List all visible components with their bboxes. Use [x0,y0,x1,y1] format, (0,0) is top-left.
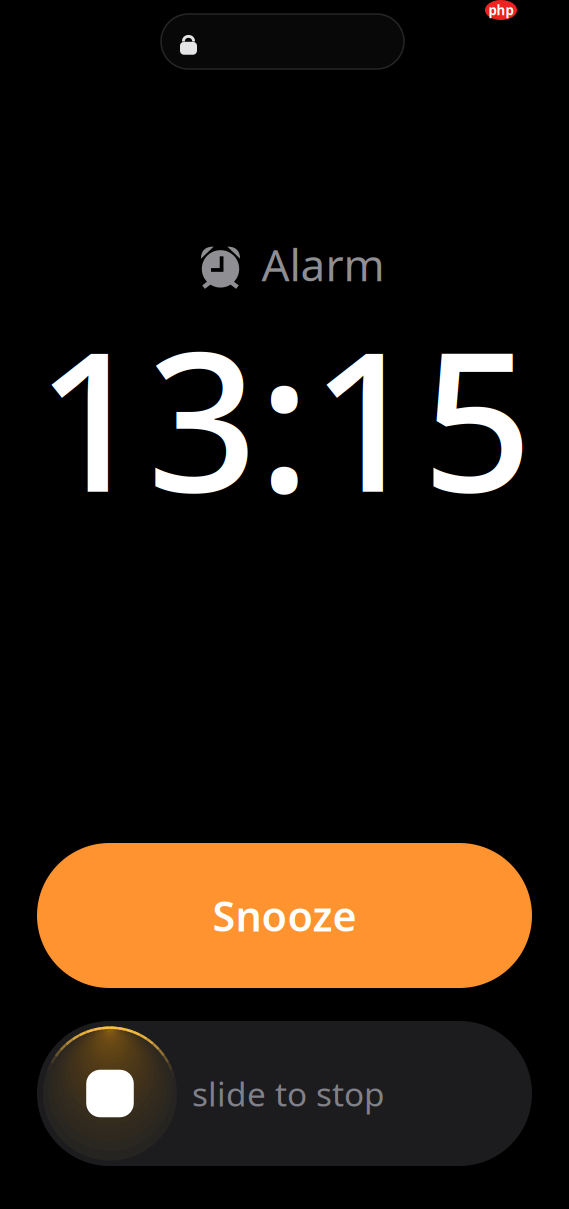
staticText: php [488,1,513,19]
staticText: Alarm [261,235,384,293]
staticText: 13:15 [36,288,533,545]
button[interactable]: Snooze [37,843,532,988]
button[interactable]: Locked [161,14,404,69]
staticText: slide to stop [192,1071,385,1116]
staticText: Snooze [212,888,356,943]
button[interactable]: slide to stop [37,1021,532,1166]
